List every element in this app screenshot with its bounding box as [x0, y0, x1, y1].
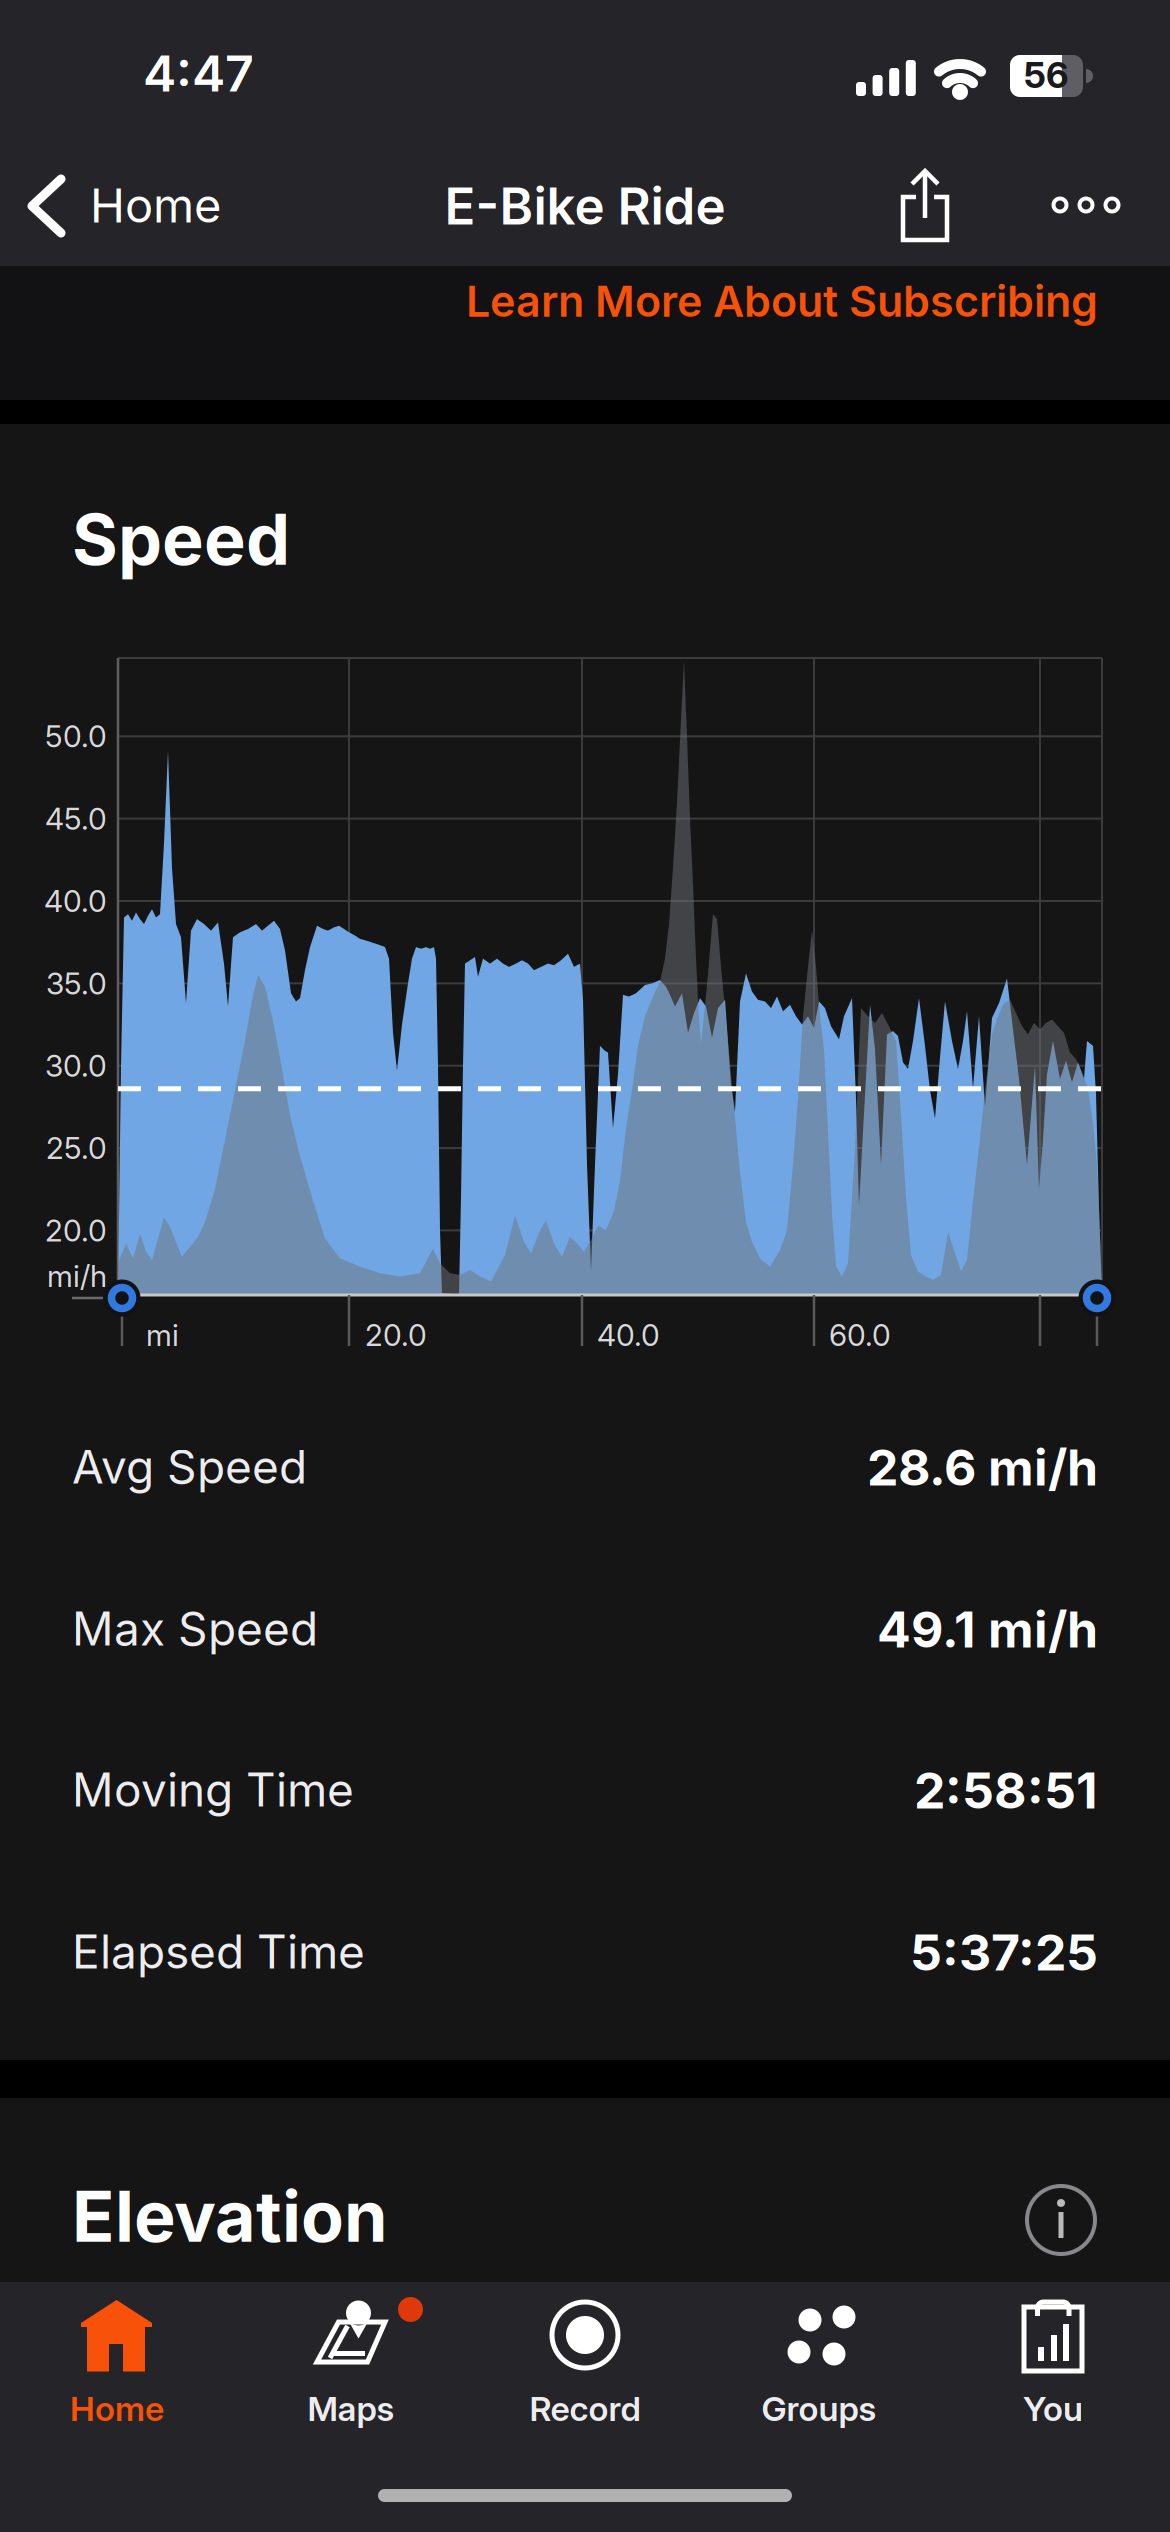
staticText: 40.0: [44, 883, 107, 919]
button[interactable]: Home: [0, 2282, 234, 2442]
staticText: 28.6 mi/h: [867, 1437, 1098, 1497]
staticText: Maps: [307, 2388, 394, 2429]
staticText: 35.0: [46, 965, 107, 1002]
staticText: E-Bike Ride: [444, 175, 725, 237]
staticText: Elevation: [72, 2174, 388, 2259]
staticText: Home: [70, 2388, 164, 2429]
staticText: Elapsed Time: [72, 1924, 365, 1980]
staticText: 20.0: [45, 1212, 107, 1249]
button[interactable]: Groups: [702, 2282, 936, 2442]
staticText: Avg Speed: [72, 1439, 307, 1495]
staticText: Learn More About Subscribing: [466, 275, 1098, 327]
staticText: Max Speed: [72, 1601, 318, 1657]
button[interactable]: Elevation info: [1011, 2170, 1111, 2270]
button[interactable]: Share: [880, 150, 970, 260]
staticText: 49.1 mi/h: [877, 1599, 1098, 1659]
button[interactable]: Maps: [234, 2282, 468, 2442]
staticText: Speed: [72, 497, 290, 582]
staticText: 20.0: [365, 1317, 427, 1353]
button[interactable]: More options: [1040, 160, 1132, 250]
staticText: 40.0: [597, 1317, 660, 1353]
staticText: 50.0: [45, 718, 107, 755]
staticText: Record: [529, 2388, 640, 2429]
staticText: 56: [1024, 53, 1069, 97]
staticText: Groups: [761, 2388, 876, 2429]
staticText: 4:47: [143, 43, 254, 103]
staticText: 2:58:51: [914, 1760, 1098, 1820]
staticText: 45.0: [45, 801, 107, 837]
staticText: 5:37:25: [910, 1922, 1098, 1982]
staticText: mi: [146, 1317, 179, 1353]
staticText: 60.0: [829, 1317, 891, 1353]
staticText: 30.0: [45, 1048, 107, 1084]
button[interactable]: You: [936, 2282, 1170, 2442]
staticText: Home: [90, 177, 221, 234]
staticText: You: [1023, 2388, 1083, 2429]
button[interactable]: Record: [468, 2282, 702, 2442]
button[interactable]: Back: [16, 150, 246, 260]
staticText: mi/h: [47, 1258, 107, 1294]
staticText: 25.0: [46, 1130, 107, 1166]
staticText: Moving Time: [72, 1762, 354, 1818]
button[interactable]: Learn More About Subscribing: [338, 275, 1098, 365]
